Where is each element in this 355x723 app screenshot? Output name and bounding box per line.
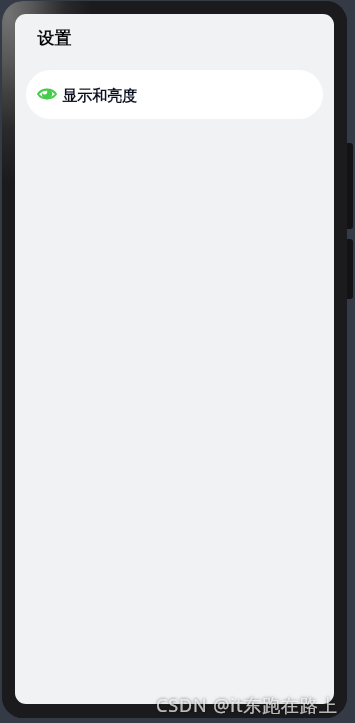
staticText: CSDN @it东跑在路上 (156, 693, 338, 718)
staticText: 显示和亮度 (62, 87, 137, 106)
button[interactable]: 显示和亮度 (26, 70, 323, 119)
staticText: 设置 (37, 28, 71, 49)
